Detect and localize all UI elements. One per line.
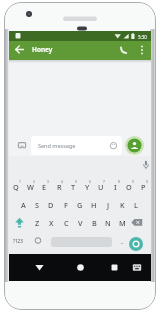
button[interactable]: Send message bbox=[31, 136, 122, 155]
button[interactable]: V bbox=[73, 217, 87, 229]
button[interactable]: L bbox=[129, 199, 143, 211]
staticText: K bbox=[120, 200, 125, 210]
button[interactable]: U bbox=[94, 181, 108, 193]
staticText: D bbox=[48, 200, 54, 210]
staticText: J bbox=[107, 200, 110, 210]
button[interactable]: R bbox=[52, 181, 66, 193]
button[interactable]: P bbox=[136, 181, 150, 193]
staticText: 6 bbox=[89, 180, 91, 184]
button[interactable] bbox=[129, 237, 143, 251]
button[interactable]: 5 bbox=[69, 176, 83, 188]
staticText: O bbox=[126, 182, 132, 192]
staticText: . bbox=[121, 236, 123, 246]
button[interactable]: Q bbox=[9, 181, 23, 193]
staticText: E bbox=[42, 182, 47, 192]
staticText: P bbox=[141, 182, 146, 192]
button[interactable]: O bbox=[122, 181, 136, 193]
button[interactable]: 4 bbox=[55, 176, 69, 188]
button[interactable] bbox=[13, 216, 26, 229]
button[interactable]: 1 bbox=[13, 176, 27, 188]
staticText: B bbox=[92, 218, 97, 228]
staticText: 4 bbox=[61, 180, 63, 184]
button[interactable]: S bbox=[30, 199, 44, 211]
button[interactable]: A bbox=[16, 199, 30, 211]
button[interactable]: B bbox=[87, 217, 101, 229]
button[interactable]: F bbox=[59, 199, 73, 211]
staticText: 7 bbox=[103, 180, 105, 184]
button[interactable]: M bbox=[115, 217, 129, 229]
staticText: C bbox=[64, 218, 69, 228]
button[interactable] bbox=[130, 216, 144, 229]
button[interactable]: I bbox=[108, 181, 122, 193]
staticText: 2 bbox=[33, 180, 35, 184]
staticText: H bbox=[91, 200, 97, 210]
staticText: L bbox=[134, 200, 138, 210]
button[interactable]: Z bbox=[30, 217, 44, 229]
staticText: U bbox=[98, 182, 104, 192]
staticText: R bbox=[57, 182, 62, 192]
staticText: 0 bbox=[146, 180, 148, 184]
staticText: Z bbox=[35, 218, 40, 228]
button[interactable]: X bbox=[44, 217, 58, 229]
button[interactable]: Y bbox=[80, 181, 94, 193]
staticText: Y bbox=[85, 182, 90, 192]
button[interactable] bbox=[141, 159, 151, 171]
button[interactable]: W bbox=[23, 181, 37, 193]
button[interactable]: J bbox=[101, 199, 115, 211]
button[interactable] bbox=[32, 234, 44, 247]
staticText: 5 bbox=[75, 180, 77, 184]
button[interactable] bbox=[13, 43, 26, 56]
staticText: 5:30 bbox=[138, 34, 147, 40]
staticText: A bbox=[21, 200, 26, 210]
button[interactable]: E bbox=[37, 181, 51, 193]
button[interactable]: 6 bbox=[83, 176, 97, 188]
button[interactable]: G bbox=[73, 199, 87, 211]
staticText: 8 bbox=[118, 180, 120, 184]
button[interactable]: 2 bbox=[27, 176, 41, 188]
button[interactable]: N bbox=[101, 217, 115, 229]
staticText: 3 bbox=[47, 180, 49, 184]
staticText: F bbox=[64, 200, 68, 210]
button[interactable]: 0 bbox=[140, 176, 154, 188]
button[interactable]: C bbox=[59, 217, 73, 229]
staticText: T bbox=[71, 182, 76, 192]
button[interactable] bbox=[137, 44, 147, 56]
button[interactable] bbox=[108, 261, 121, 274]
staticText: Q bbox=[13, 182, 19, 192]
staticText: X bbox=[49, 218, 54, 228]
button[interactable] bbox=[33, 261, 46, 274]
staticText: 9 bbox=[132, 180, 134, 184]
button[interactable]: T bbox=[66, 181, 80, 193]
button[interactable] bbox=[131, 262, 143, 273]
button[interactable]: K bbox=[115, 199, 129, 211]
button[interactable]: H bbox=[87, 199, 101, 211]
button[interactable] bbox=[125, 136, 144, 155]
button[interactable] bbox=[17, 139, 27, 151]
button[interactable] bbox=[118, 44, 130, 56]
staticText: Send message bbox=[38, 142, 76, 149]
staticText: ?123 bbox=[13, 238, 23, 244]
staticText: Honey bbox=[32, 45, 53, 54]
button[interactable]: . bbox=[115, 235, 129, 247]
staticText: I bbox=[114, 182, 117, 192]
button[interactable]: 3 bbox=[41, 176, 55, 188]
button[interactable]: ?123 bbox=[11, 235, 25, 247]
staticText: G bbox=[77, 200, 83, 210]
button[interactable]: 8 bbox=[112, 176, 126, 188]
staticText: M bbox=[119, 218, 126, 228]
staticText: 1 bbox=[19, 180, 21, 184]
button[interactable]: 7 bbox=[97, 176, 111, 188]
button[interactable]: D bbox=[44, 199, 58, 211]
staticText: W bbox=[27, 182, 34, 192]
button[interactable]: 9 bbox=[126, 176, 140, 188]
staticText: S bbox=[35, 200, 40, 210]
button[interactable] bbox=[74, 261, 87, 274]
staticText: N bbox=[105, 218, 111, 228]
staticText: V bbox=[78, 218, 83, 228]
